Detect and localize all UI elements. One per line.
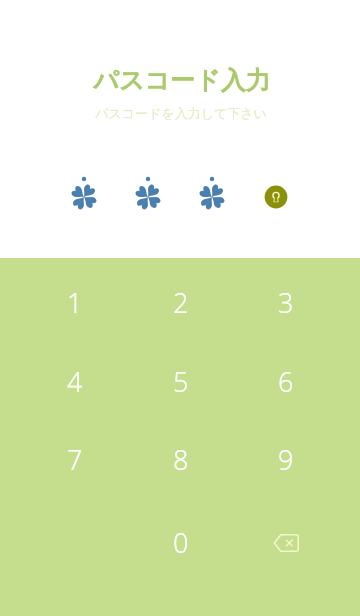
staticText: パスコードを入力して下さい	[95, 105, 267, 121]
staticText: 0	[173, 524, 189, 561]
button[interactable]: 1	[25, 266, 125, 338]
button[interactable]: 9	[236, 423, 336, 495]
button[interactable]: Backspace	[236, 506, 336, 578]
button[interactable]: 7	[25, 423, 125, 495]
button[interactable]: 4	[25, 345, 125, 417]
staticText: 1	[67, 284, 83, 321]
button[interactable]: 8	[131, 423, 231, 495]
staticText: パスコード入力	[93, 65, 271, 96]
button[interactable]: 5	[131, 345, 231, 417]
staticText: 8	[173, 441, 189, 478]
button[interactable]: 3	[236, 266, 336, 338]
other: Entered digit	[133, 178, 163, 212]
staticText: 2	[173, 284, 189, 321]
staticText: 7	[67, 441, 83, 478]
button[interactable]: 2	[131, 266, 231, 338]
other: Entered digit	[69, 178, 99, 212]
button[interactable]: 0	[131, 506, 231, 578]
staticText: 3	[278, 284, 294, 321]
staticText: 5	[173, 363, 189, 400]
other: Entered digit	[197, 178, 227, 212]
other: Next digit	[261, 178, 291, 212]
staticText: 6	[278, 363, 294, 400]
staticText: 9	[278, 441, 294, 478]
button[interactable]: 6	[236, 345, 336, 417]
staticText: 4	[67, 363, 83, 400]
